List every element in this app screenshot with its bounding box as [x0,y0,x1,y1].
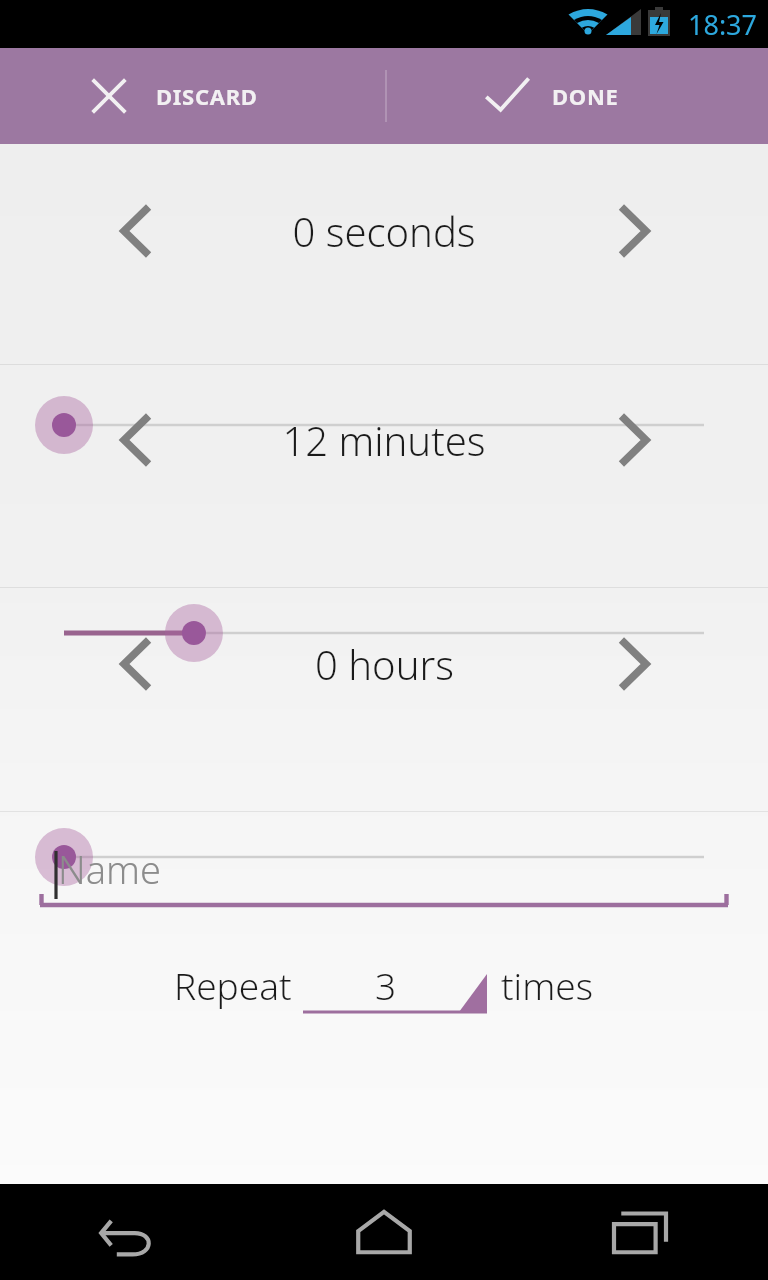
button[interactable]: Increase minutes [594,401,674,479]
button[interactable]: Increase hours [594,625,674,703]
button[interactable]: Decrease seconds [96,192,176,270]
button[interactable]: Slider [0,389,768,461]
button[interactable]: Slider [0,821,768,893]
staticText: 0 hours [315,637,454,691]
button[interactable]: DISCARD [0,48,384,144]
staticText: Name [58,843,161,895]
button[interactable]: DONE [384,48,768,144]
button[interactable]: Name [0,827,768,917]
button[interactable]: Slider [0,597,768,669]
staticText: 18:37 [688,6,758,43]
staticText: times [501,960,593,1010]
staticText: Repeat [174,960,292,1010]
button[interactable]: Repeat count [303,944,487,1018]
button[interactable]: Increase seconds [594,192,674,270]
staticText: DONE [552,81,619,111]
button[interactable]: Decrease hours [96,625,176,703]
staticText: 0 seconds [292,204,476,258]
button[interactable]: Back [0,1184,256,1280]
staticText: 12 minutes [282,413,486,467]
button[interactable]: Decrease minutes [96,401,176,479]
staticText: DISCARD [156,81,258,111]
button[interactable]: Home [256,1184,512,1280]
button[interactable]: Recent apps [512,1184,768,1280]
staticText: 3 [375,960,397,1010]
